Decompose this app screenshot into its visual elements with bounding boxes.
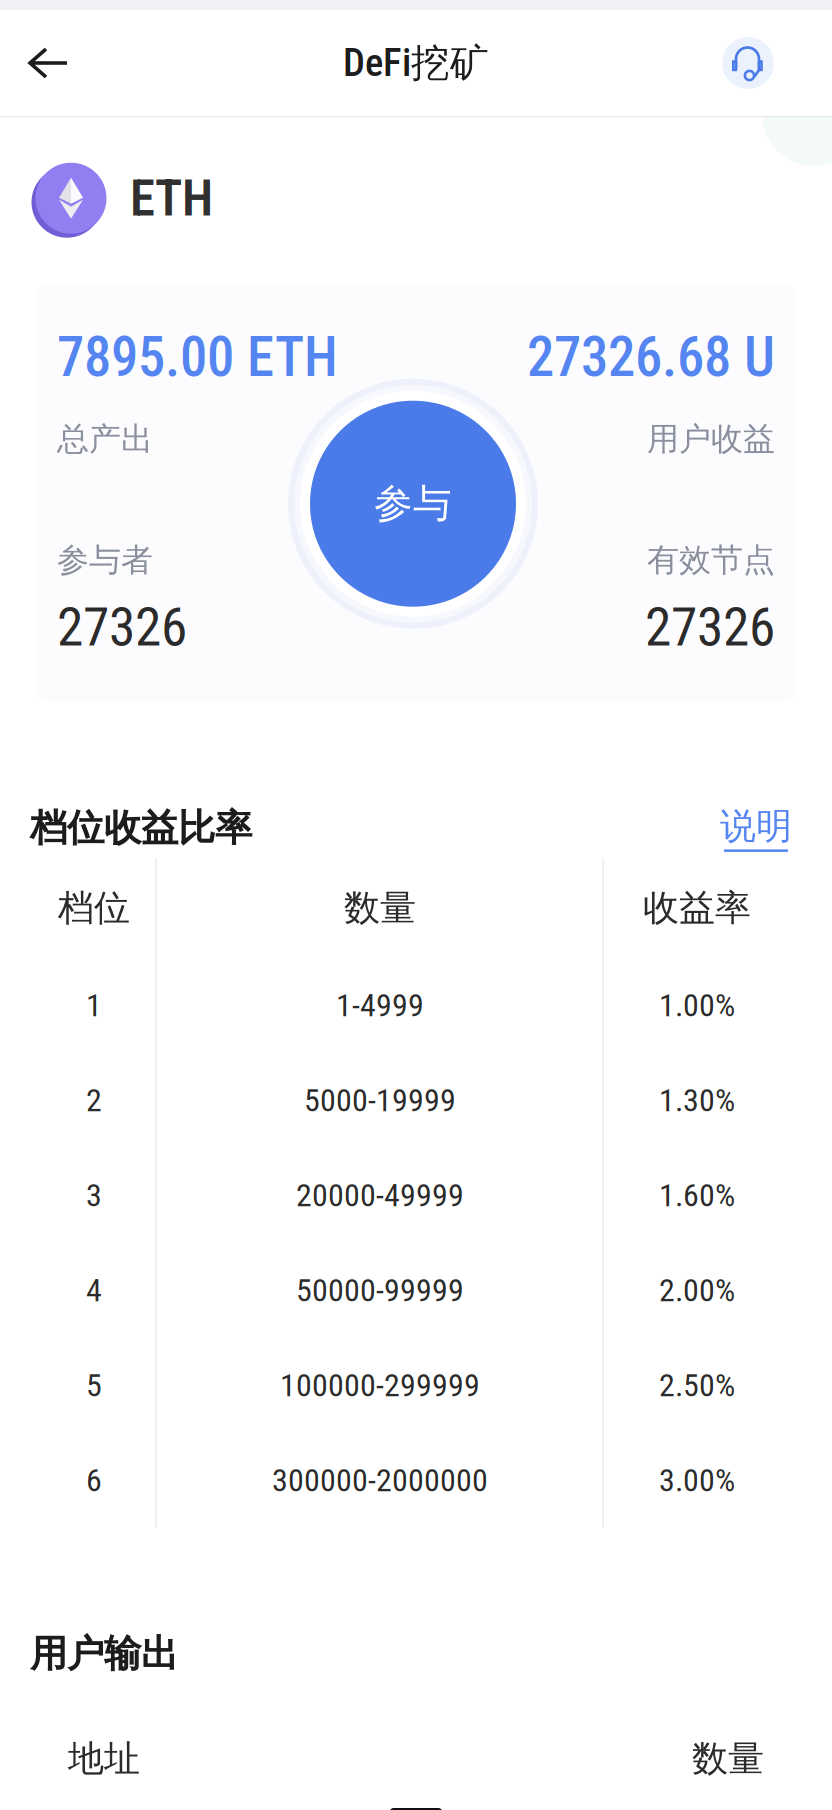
staticText: 2.50% bbox=[659, 1367, 735, 1404]
staticText: 300000-2000000 bbox=[272, 1462, 488, 1499]
staticText: ETH bbox=[130, 168, 213, 228]
staticText: 7895.00 ETH bbox=[57, 325, 338, 389]
button[interactable]: 说明 bbox=[720, 804, 792, 852]
staticText: 5000-19999 bbox=[304, 1082, 456, 1119]
staticText: 档位收益比率 bbox=[30, 805, 252, 851]
staticText: 说明 bbox=[720, 804, 792, 848]
staticText: 6 bbox=[86, 1462, 102, 1499]
staticText: 50000-99999 bbox=[296, 1272, 464, 1309]
staticText: 1 bbox=[86, 987, 102, 1024]
button[interactable]: 参与 bbox=[291, 368, 541, 618]
staticText: 参与者 bbox=[57, 540, 153, 580]
staticText: 27326 bbox=[57, 596, 187, 658]
staticText: 收益率 bbox=[643, 886, 751, 930]
staticText: 1-4999 bbox=[336, 987, 424, 1024]
staticText: 4 bbox=[86, 1272, 102, 1309]
staticText: 3.00% bbox=[659, 1462, 735, 1499]
staticText: DeFi挖矿 bbox=[343, 39, 489, 87]
staticText: 100000-299999 bbox=[280, 1367, 480, 1404]
staticText: 数量 bbox=[692, 1737, 764, 1781]
staticText: 1.60% bbox=[659, 1177, 735, 1214]
staticText: 用户收益 bbox=[647, 419, 775, 459]
staticText: 有效节点 bbox=[647, 540, 775, 580]
staticText: 用户输出 bbox=[30, 1631, 178, 1677]
staticText: 2.00% bbox=[659, 1272, 735, 1309]
staticText: 27326.68 U bbox=[527, 325, 775, 389]
staticText: 总产出 bbox=[57, 419, 153, 459]
staticText: 数量 bbox=[344, 886, 416, 930]
staticText: 5 bbox=[86, 1367, 102, 1404]
staticText: 地址 bbox=[68, 1737, 140, 1781]
staticText: 档位 bbox=[58, 886, 130, 930]
staticText: 1.30% bbox=[659, 1082, 735, 1119]
staticText: 参与 bbox=[374, 480, 452, 527]
staticText: 3 bbox=[86, 1177, 102, 1214]
staticText: 1.00% bbox=[659, 987, 735, 1024]
button[interactable]: Customer support bbox=[704, 21, 832, 105]
staticText: 20000-49999 bbox=[296, 1177, 464, 1214]
staticText: 27326 bbox=[645, 596, 775, 658]
button[interactable]: Back bbox=[0, 24, 89, 102]
staticText: 2 bbox=[86, 1082, 102, 1119]
